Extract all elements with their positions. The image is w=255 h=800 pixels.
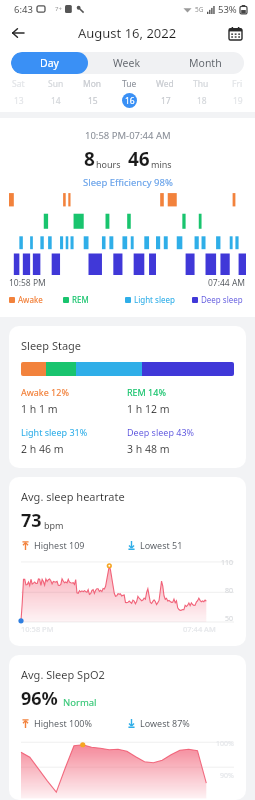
staticText: 7+ [55,5,62,13]
button[interactable]: Calendar [223,21,247,45]
staticText: Sleep Efficiency 98% [83,176,173,189]
staticText: Light sleep 31% [21,426,88,438]
button[interactable]: Day [11,52,88,74]
staticText: 17 [161,95,171,107]
staticText: August 16, 2022 [78,24,177,42]
staticText: 10:58 PM [9,277,46,289]
button[interactable]: Thu [183,78,219,108]
staticText: 2 h 46 m [21,442,64,456]
staticText: Highest 100% [34,717,92,729]
staticText: Avg. Sleep SpO2 [21,667,105,682]
button[interactable]: Tue [111,78,147,108]
button[interactable]: Mon [74,78,111,108]
staticText: Lowest 51 [140,539,183,551]
button[interactable]: Sat [0,78,37,108]
button[interactable]: Month [166,52,244,74]
staticText: Mon [83,78,102,90]
staticText: Deep sleep 43% [127,426,195,438]
staticText: Week [113,56,141,70]
staticText: 1 h 12 m [127,402,170,416]
staticText: 14 [51,95,61,107]
button[interactable]: Back [5,20,31,46]
staticText: 53% [218,3,237,16]
staticText: 10:58 PM [21,624,54,634]
staticText: Lowest 87% [140,717,190,729]
staticText: Thu [193,78,209,90]
staticText: Light sleep [134,294,175,305]
staticText: 8 [84,146,95,172]
staticText: 10:58 PM-07:44 AM [85,129,171,142]
staticText: 19 [233,95,243,107]
button[interactable]: Fri [219,78,255,108]
staticText: Sat [12,78,25,90]
staticText: Sun [48,78,64,90]
staticText: Highest 109 [34,539,85,551]
staticText: 3 h 48 m [127,442,170,456]
staticText: 100% [216,739,234,749]
button[interactable]: Sleep Stage [9,326,246,468]
staticText: Wed [156,78,174,90]
staticText: REM [72,294,89,305]
staticText: Day [40,56,59,70]
staticText: 6:43 [14,3,33,16]
staticText: 07:44 AM [183,624,216,634]
staticText: 16 [125,95,135,107]
staticText: 15 [88,95,98,107]
staticText: 07:44 AM [208,277,246,289]
staticText: REM 14% [127,386,166,398]
staticText: 18 [197,95,207,107]
staticText: mins [151,158,172,170]
staticText: Awake [18,294,43,305]
staticText: 96% [21,686,58,711]
staticText: 73 [21,508,42,533]
staticText: Fri [232,78,243,90]
staticText: Sleep Stage [21,338,82,353]
staticText: bpm [44,519,64,531]
staticText: 46 [128,146,150,172]
staticText: 50 [225,614,234,624]
button[interactable]: Week [88,52,166,74]
staticText: 80 [225,586,234,596]
staticText: Avg. sleep heartrate [21,489,125,504]
button[interactable]: Sun [37,78,74,108]
button[interactable]: Wed [147,78,183,108]
staticText: 90% [220,771,234,781]
staticText: Tue [122,78,137,90]
staticText: Awake 12% [21,386,69,398]
staticText: 110 [221,558,234,568]
staticText: 1 h 1 m [21,402,58,416]
staticText: Normal [63,696,97,709]
button[interactable]: Avg. Sleep SpO2 [9,655,246,800]
staticText: 13 [14,95,24,107]
staticText: 5G [195,5,204,14]
staticText: Month [189,56,222,70]
staticText: hours [96,158,121,170]
staticText: Deep sleep [201,294,243,305]
button[interactable]: Avg. sleep heartrate [9,477,246,646]
